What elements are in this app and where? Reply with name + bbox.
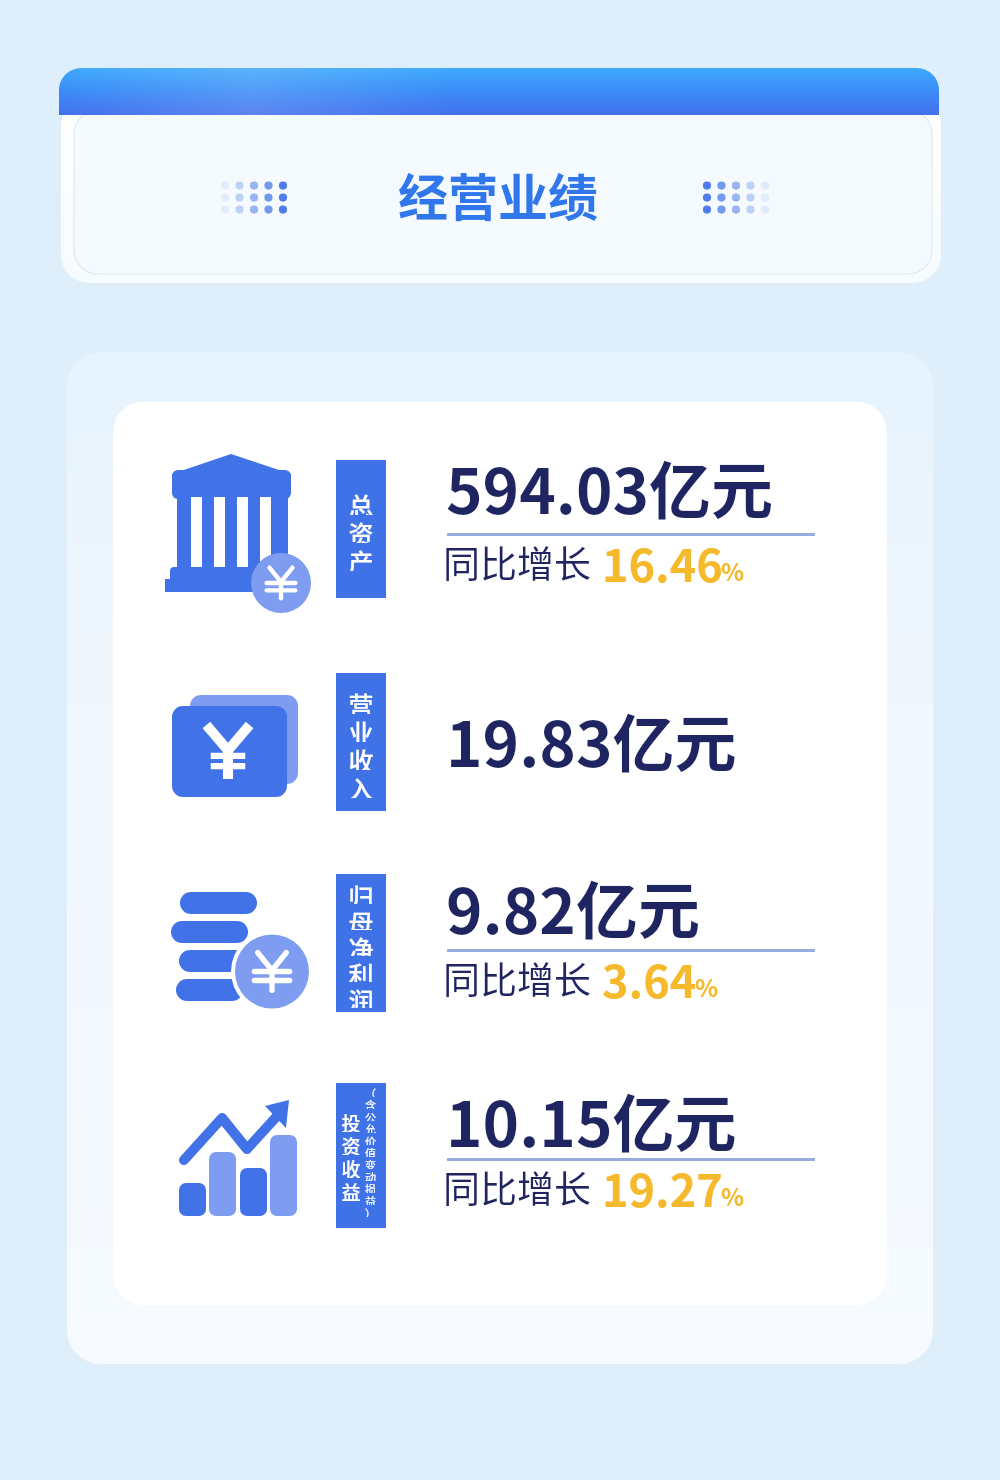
button[interactable]: 总资产 xyxy=(160,450,310,600)
staticText: % xyxy=(721,553,745,588)
button[interactable]: 归母净利润 xyxy=(160,864,310,1014)
staticText: 10.15亿元 xyxy=(446,1075,737,1165)
staticText: 损 xyxy=(365,1181,376,1193)
staticText: % xyxy=(695,969,719,1004)
staticText: 公 xyxy=(365,1109,376,1121)
staticText: 变 xyxy=(365,1157,376,1169)
button[interactable]: 19.83亿元 xyxy=(446,695,737,785)
staticText: 19.27 xyxy=(602,1155,723,1220)
staticText: 594.03亿元 xyxy=(446,442,774,532)
staticText: 资 xyxy=(348,515,374,543)
button[interactable]: 投 xyxy=(336,1083,386,1228)
staticText: 经营业绩 xyxy=(398,158,598,224)
staticText: 收 xyxy=(348,742,374,770)
button[interactable]: 营业收入 xyxy=(160,663,310,813)
staticText: 动 xyxy=(365,1169,376,1181)
staticText: 收 xyxy=(341,1155,361,1178)
staticText: 总 xyxy=(348,487,374,515)
staticText: 益 xyxy=(341,1178,361,1201)
staticText: 3.64 xyxy=(602,946,697,1011)
button[interactable]: 总 xyxy=(336,460,386,598)
staticText: 同比增长 xyxy=(443,951,591,1005)
button[interactable]: 经营业绩 xyxy=(328,158,668,224)
staticText: 允 xyxy=(365,1121,376,1133)
staticText: （ xyxy=(365,1085,376,1097)
staticText: 同比增长 xyxy=(443,1160,591,1214)
button[interactable]: 9.82亿元 xyxy=(446,862,700,952)
staticText: 净 xyxy=(348,930,374,956)
staticText: 益 xyxy=(365,1193,376,1205)
button[interactable]: 10.15亿元 xyxy=(446,1075,737,1165)
staticText: 润 xyxy=(348,982,374,1008)
staticText: 16.46 xyxy=(602,530,723,595)
staticText: % xyxy=(721,1178,745,1213)
staticText: 入 xyxy=(348,770,374,798)
staticText: 含 xyxy=(365,1097,376,1109)
staticText: 营 xyxy=(348,686,374,714)
staticText: 投 xyxy=(341,1109,361,1132)
staticText: 同比增长 xyxy=(443,535,591,589)
staticText: 母 xyxy=(348,904,374,930)
staticText: 业 xyxy=(348,714,374,742)
button[interactable]: 归 xyxy=(336,874,386,1012)
button[interactable]: 594.03亿元 xyxy=(446,442,774,532)
staticText: 资 xyxy=(341,1132,361,1155)
button[interactable]: 营 xyxy=(336,673,386,811)
staticText: 利 xyxy=(348,956,374,982)
staticText: 19.83亿元 xyxy=(446,695,737,785)
staticText: 9.82亿元 xyxy=(446,862,700,952)
staticText: 值 xyxy=(365,1145,376,1157)
staticText: ） xyxy=(365,1205,376,1217)
staticText: 产 xyxy=(348,543,374,571)
staticText: 价 xyxy=(365,1133,376,1145)
button[interactable]: 投资收益 xyxy=(160,1073,310,1223)
staticText: 归 xyxy=(348,878,374,904)
